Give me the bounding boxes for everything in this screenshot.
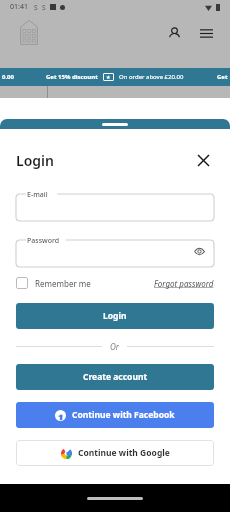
staticText: Login bbox=[16, 151, 54, 170]
staticText: Login bbox=[103, 310, 127, 322]
staticText: S bbox=[34, 3, 38, 12]
staticText: E-mail bbox=[27, 190, 48, 200]
staticText: Password bbox=[27, 236, 60, 246]
staticText: Continue with Facebook bbox=[72, 409, 175, 421]
staticText: Continue with Google bbox=[78, 447, 170, 459]
staticText: Get 15% discount bbox=[46, 73, 98, 81]
staticText: 0.00 bbox=[2, 73, 14, 81]
button[interactable]: Forgot password bbox=[154, 278, 214, 289]
button[interactable]: Remember me bbox=[16, 277, 91, 289]
staticText: Get bbox=[217, 73, 228, 81]
staticText: 01:41 bbox=[10, 2, 28, 12]
button[interactable]: Show password bbox=[192, 244, 206, 258]
staticText: Remember me bbox=[35, 278, 91, 289]
staticText: Create account bbox=[83, 371, 148, 383]
button[interactable]: Close bbox=[192, 149, 214, 171]
staticText: Or bbox=[110, 341, 119, 352]
staticText: S bbox=[42, 3, 46, 12]
button[interactable]: Continue with Facebook bbox=[16, 402, 214, 428]
button[interactable]: Create account bbox=[16, 364, 214, 390]
staticText: On order above £20.00 bbox=[119, 73, 184, 81]
button[interactable]: Account bbox=[164, 23, 184, 43]
button[interactable]: Login bbox=[16, 303, 214, 329]
staticText: ★ bbox=[106, 74, 111, 80]
button[interactable]: Menu bbox=[196, 23, 216, 43]
button[interactable]: Continue with Google bbox=[16, 440, 214, 466]
